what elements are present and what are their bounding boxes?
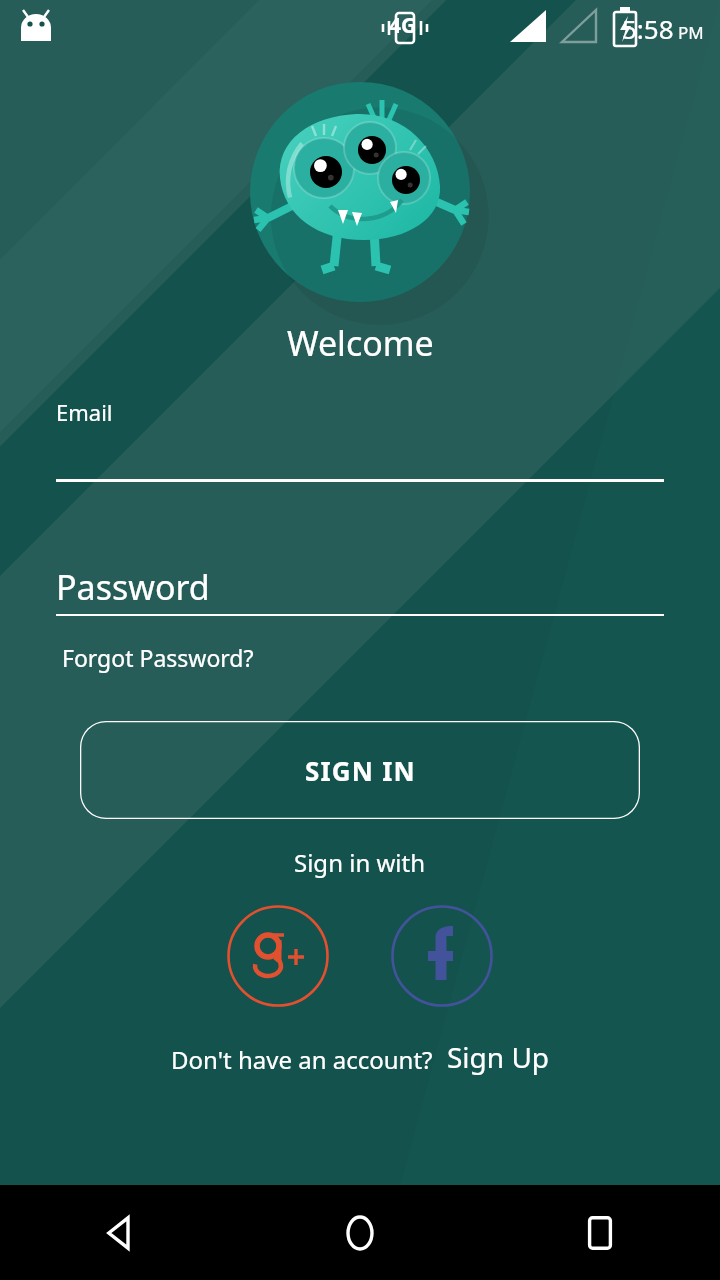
staticText: SIGN IN — [305, 753, 416, 788]
staticText: Welcome — [287, 320, 434, 366]
button[interactable]: Sign in with Google Plus — [226, 904, 330, 1008]
button[interactable]: Forgot Password? — [62, 642, 254, 673]
button[interactable]: Back — [0, 1185, 240, 1280]
button[interactable]: Sign in with Facebook — [390, 904, 494, 1008]
staticText: Password — [56, 564, 210, 610]
staticText: 5:58 — [622, 11, 674, 46]
button[interactable]: Email — [56, 397, 664, 482]
staticText: PM — [678, 21, 704, 44]
button[interactable]: Sign Up — [447, 1038, 550, 1076]
staticText: Don't have an account? — [171, 1043, 433, 1076]
button[interactable]: Recent apps — [480, 1185, 720, 1280]
button[interactable]: SIGN IN — [80, 721, 640, 819]
button[interactable]: Home — [240, 1185, 480, 1280]
staticText: Sign in with — [294, 846, 426, 879]
button[interactable]: Password — [56, 564, 664, 616]
staticText: Email — [56, 397, 113, 427]
staticText: 4G — [389, 11, 417, 40]
